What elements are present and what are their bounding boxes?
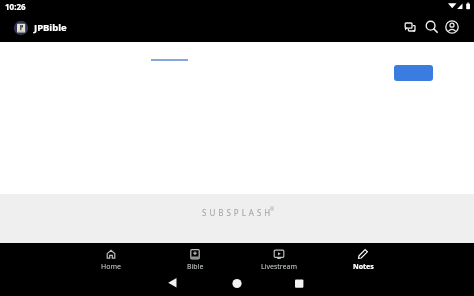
button[interactable] (152, 271, 186, 295)
staticText: Notes (353, 262, 374, 272)
button[interactable]: Livestream (237, 243, 321, 273)
staticText: Home (101, 262, 121, 272)
button[interactable] (282, 271, 316, 295)
staticText: SUBSPLASH (202, 207, 274, 218)
button[interactable] (424, 19, 440, 35)
button[interactable]: Bible (153, 243, 237, 273)
staticText: ® (270, 206, 275, 213)
button[interactable]: Notes (321, 243, 405, 273)
button[interactable] (444, 19, 460, 35)
staticText: Livestream (261, 262, 298, 272)
button[interactable] (402, 19, 418, 35)
staticText: Bible (187, 262, 204, 272)
staticText: 10:26 (5, 1, 26, 12)
button[interactable]: Home (69, 243, 153, 273)
staticText: JPBible (34, 21, 67, 34)
button[interactable] (394, 65, 433, 81)
button[interactable] (220, 271, 254, 295)
